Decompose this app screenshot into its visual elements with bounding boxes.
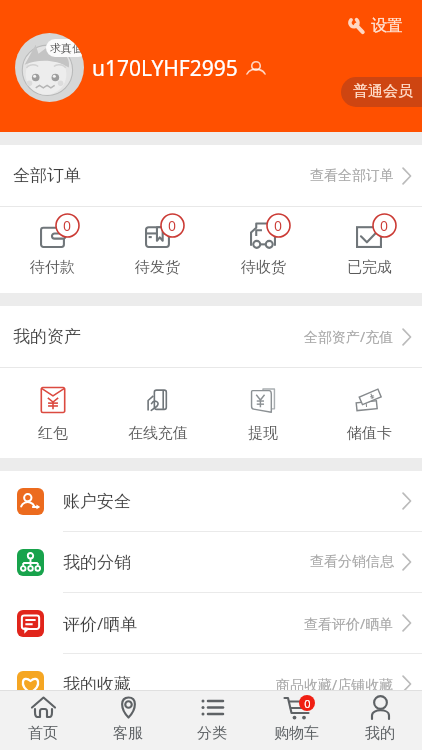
staticText: 评价/晒单 xyxy=(63,612,138,635)
staticText: 0 xyxy=(274,216,283,235)
button[interactable]: 0 xyxy=(210,207,316,293)
button[interactable]: 首页 xyxy=(0,691,85,750)
button[interactable]: 全部订单 xyxy=(0,145,422,206)
staticText: 0 xyxy=(380,216,389,235)
staticText: 账户安全 xyxy=(63,491,131,512)
staticText: 我的收藏 xyxy=(63,674,131,695)
button[interactable]: 我的资产 xyxy=(0,306,422,367)
button[interactable]: u170LYHF2995 xyxy=(92,54,266,83)
staticText: 商品收藏/店铺收藏 xyxy=(276,675,394,694)
staticText: 客服 xyxy=(113,724,143,743)
staticText: 储值卡 xyxy=(347,424,392,443)
staticText: 普通会员 xyxy=(353,82,413,101)
button[interactable]: 储值卡 xyxy=(316,368,422,458)
staticText: 首页 xyxy=(28,724,58,743)
button[interactable]: 普通会员 xyxy=(341,77,422,107)
button[interactable]: 账户安全 xyxy=(0,471,422,531)
staticText: 我的分销 xyxy=(63,552,131,573)
button[interactable]: 客服 xyxy=(85,691,170,750)
button[interactable]: 我的 xyxy=(338,691,422,750)
button[interactable]: 我的收藏 xyxy=(0,654,422,714)
button[interactable]: 提现 xyxy=(210,368,316,458)
staticText: 待付款 xyxy=(30,258,75,277)
staticText: 全部资产/充值 xyxy=(304,327,394,346)
staticText: 0 xyxy=(304,696,311,711)
button[interactable]: 0 xyxy=(316,207,422,293)
button[interactable]: 我的分销 xyxy=(0,532,422,592)
staticText: 已完成 xyxy=(347,258,392,277)
staticText: 查看评价/晒单 xyxy=(304,614,394,633)
staticText: 0 xyxy=(63,216,72,235)
staticText: 分类 xyxy=(197,724,227,743)
staticText: 待收货 xyxy=(241,258,286,277)
staticText: 待发货 xyxy=(135,258,180,277)
staticText: 购物车 xyxy=(274,724,319,743)
staticText: 提现 xyxy=(248,424,278,443)
staticText: u170LYHF2995 xyxy=(92,54,238,83)
staticText: 我的 xyxy=(365,724,395,743)
button[interactable]: 在线充值 xyxy=(105,368,210,458)
staticText: 在线充值 xyxy=(128,424,188,443)
button[interactable]: 设置 xyxy=(344,12,407,40)
staticText: 我的资产 xyxy=(13,326,81,347)
staticText: 0 xyxy=(168,216,177,235)
button[interactable]: Avatar xyxy=(15,33,84,102)
button[interactable]: 0 xyxy=(0,207,105,293)
button[interactable]: 0 xyxy=(105,207,210,293)
staticText: 查看分销信息 xyxy=(310,553,394,571)
staticText: 全部订单 xyxy=(13,165,81,186)
staticText: 求真值 xyxy=(50,41,83,55)
staticText: 设置 xyxy=(371,16,403,36)
button[interactable]: 评价/晒单 xyxy=(0,593,422,653)
button[interactable]: 0 xyxy=(254,691,338,750)
staticText: 红包 xyxy=(38,424,68,443)
button[interactable]: 分类 xyxy=(170,691,254,750)
button[interactable]: 红包 xyxy=(0,368,105,458)
staticText: 查看全部订单 xyxy=(310,167,394,185)
